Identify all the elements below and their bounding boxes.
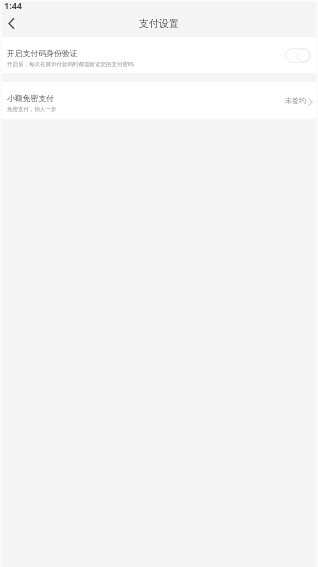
staticText: 免密支付，快人一步 — [7, 106, 57, 113]
button[interactable]: Toggle payment code verification — [285, 48, 311, 63]
staticText: 小额免密支付 — [7, 93, 55, 103]
button[interactable]: Back — [0, 14, 22, 36]
button[interactable]: 小额免密支付 — [0, 82, 318, 119]
staticText: 开启支付码身份验证 — [7, 48, 78, 58]
staticText: 开启后，每次在展示付款码时都需验证您的支付密码 — [7, 61, 134, 68]
button[interactable]: 开启支付码身份验证 — [0, 37, 318, 73]
staticText: 未签约 — [285, 96, 306, 105]
staticText: 支付设置 — [139, 17, 179, 30]
staticText: 1:44 — [4, 0, 22, 11]
